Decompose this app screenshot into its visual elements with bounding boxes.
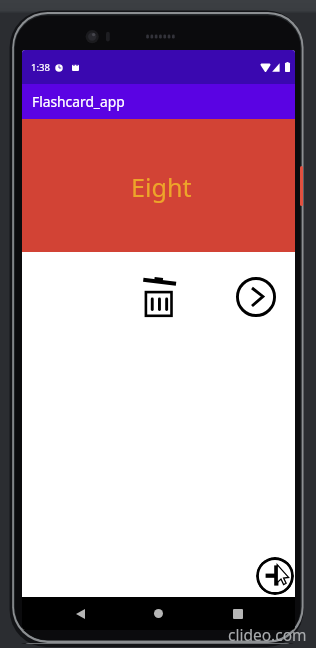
button[interactable]: Next bbox=[234, 275, 278, 319]
staticText: clideo.com bbox=[228, 624, 307, 645]
staticText: 1:38 bbox=[31, 61, 50, 74]
button[interactable]: Back bbox=[64, 597, 97, 630]
button[interactable]: Delete bbox=[138, 274, 182, 318]
staticText: Flashcard_app bbox=[32, 92, 125, 111]
button[interactable]: Recents bbox=[221, 597, 254, 630]
button[interactable]: Eight bbox=[22, 119, 295, 252]
staticText: Eight bbox=[131, 170, 192, 204]
button[interactable]: Add bbox=[256, 557, 294, 595]
button[interactable]: Home bbox=[142, 597, 175, 630]
